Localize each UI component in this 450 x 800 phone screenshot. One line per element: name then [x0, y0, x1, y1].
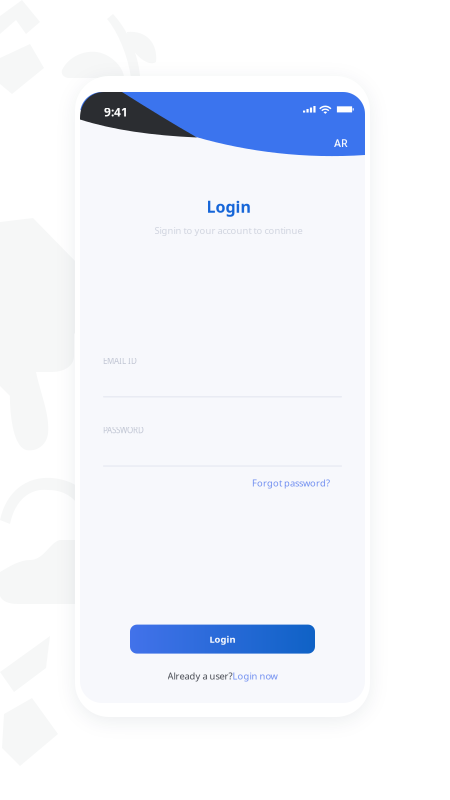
staticText: Signin to your account to continue: [154, 224, 302, 237]
staticText: 9:41: [104, 104, 128, 120]
button[interactable]: Login now: [232, 670, 277, 682]
staticText: Login: [206, 196, 250, 217]
staticText: Login: [209, 633, 235, 645]
staticText: Already a user?: [167, 670, 232, 682]
button[interactable]: AR: [334, 136, 348, 150]
button[interactable]: Login: [130, 625, 315, 654]
staticText: Forgot password?: [252, 477, 330, 489]
staticText: Login now: [232, 670, 277, 682]
button[interactable]: Forgot password?: [252, 477, 330, 489]
staticText: PASSWORD: [103, 425, 144, 435]
staticText: AR: [334, 136, 348, 150]
staticText: EMAIL ID: [103, 356, 137, 366]
